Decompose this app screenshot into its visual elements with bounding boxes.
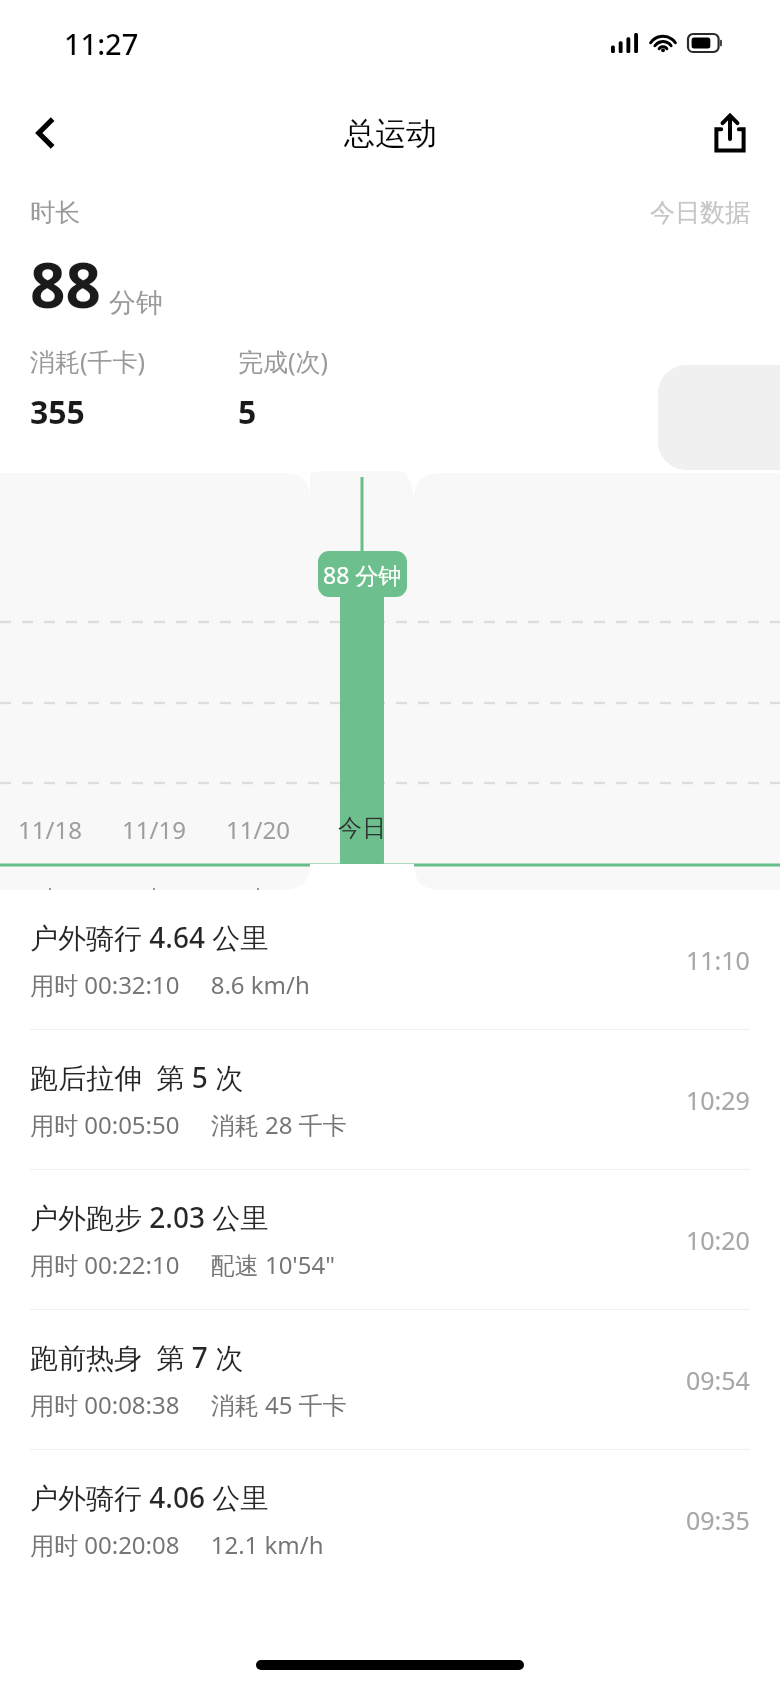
staticText: 今日: [302, 813, 422, 843]
staticText: 用时 00:08:38 消耗 45 千卡: [30, 1388, 347, 1421]
staticText: 11/20: [198, 813, 318, 846]
staticText: 用时 00:22:10 配速 10'54": [30, 1248, 336, 1281]
staticText: 用时 00:32:10 8.6 km/h: [30, 968, 310, 1001]
staticText: 10:20: [686, 1223, 750, 1257]
staticText: 户外跑步 2.03 公里: [30, 1198, 269, 1236]
button[interactable]: 跑后拉伸 第 5 次: [0, 1030, 780, 1169]
staticText: 11/18: [0, 813, 110, 846]
button[interactable]: 今日数据: [650, 197, 750, 228]
staticText: 消耗(千卡): [30, 344, 146, 378]
staticText: 时长: [30, 197, 80, 228]
staticText: 11/19: [94, 813, 214, 846]
staticText: 户外骑行 4.64 公里: [30, 918, 269, 956]
button[interactable]: 户外跑步 2.03 公里: [0, 1170, 780, 1309]
button[interactable]: Share: [698, 101, 762, 165]
staticText: 户外骑行 4.06 公里: [30, 1478, 269, 1516]
staticText: 总运动: [344, 114, 437, 153]
staticText: 09:54: [686, 1363, 750, 1397]
staticText: 355: [30, 390, 85, 434]
staticText: 跑后拉伸 第 5 次: [30, 1058, 244, 1096]
staticText: 5: [238, 390, 257, 434]
button[interactable]: 户外骑行 4.06 公里: [0, 1450, 780, 1589]
staticText: 完成(次): [238, 344, 329, 378]
staticText: 分钟: [109, 286, 163, 320]
staticText: 10:29: [686, 1083, 750, 1117]
button[interactable]: 跑前热身 第 7 次: [0, 1310, 780, 1449]
staticText: 用时 00:05:50 消耗 28 千卡: [30, 1108, 347, 1141]
staticText: 88: [30, 242, 101, 326]
staticText: 88 分钟: [323, 559, 402, 590]
staticText: 11:10: [686, 943, 750, 977]
button[interactable]: 户外骑行 4.64 公里: [0, 890, 780, 1029]
button[interactable]: Back: [14, 101, 78, 165]
staticText: 09:35: [686, 1503, 750, 1537]
staticText: 11:27: [64, 24, 139, 63]
staticText: 用时 00:20:08 12.1 km/h: [30, 1528, 324, 1561]
staticText: 跑前热身 第 7 次: [30, 1338, 244, 1376]
